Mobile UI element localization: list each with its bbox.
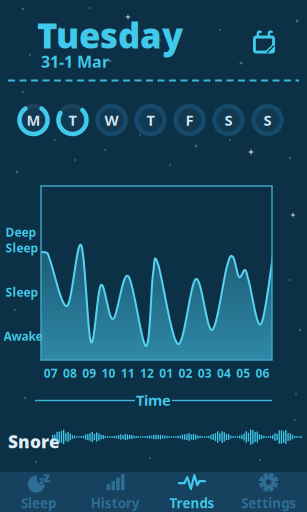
staticText: W (104, 110, 118, 130)
staticText: 10 (101, 365, 115, 381)
button[interactable]: Trends (153, 472, 230, 512)
staticText: z (43, 468, 50, 486)
staticText: Tuesday (37, 12, 183, 58)
staticText: 03 (198, 365, 212, 381)
staticText: 04 (217, 365, 231, 381)
staticText: Trends (169, 494, 214, 512)
staticText: 12 (140, 365, 154, 381)
staticText: 02 (178, 365, 192, 381)
staticText: 01 (159, 365, 173, 381)
button[interactable]: Calendar (249, 27, 279, 57)
button[interactable]: History (77, 472, 154, 512)
button[interactable]: S (209, 100, 247, 140)
staticText: Sleep (5, 284, 38, 300)
staticText: 06 (255, 365, 269, 381)
staticText: 08 (63, 365, 77, 381)
button[interactable]: Settings (230, 472, 307, 512)
staticText: Sleep (21, 494, 56, 512)
staticText: S (263, 110, 271, 130)
button[interactable]: T (131, 100, 169, 140)
staticText: T (146, 110, 154, 130)
staticText: Awake (3, 328, 42, 344)
button[interactable]: T (53, 100, 91, 140)
staticText: History (91, 494, 140, 512)
staticText: z (39, 473, 44, 487)
staticText: Settings (241, 494, 296, 512)
staticText: 09 (82, 365, 96, 381)
button[interactable]: z (0, 472, 77, 512)
button[interactable]: F (170, 100, 208, 140)
staticText: 05 (236, 365, 250, 381)
staticText: S (224, 110, 232, 130)
button[interactable]: M (14, 100, 52, 140)
button[interactable]: W (92, 100, 130, 140)
staticText: 07 (44, 365, 58, 381)
button[interactable]: S (248, 100, 286, 140)
staticText: Time (136, 390, 171, 410)
staticText: Snore (8, 430, 60, 453)
staticText: 11 (121, 365, 135, 381)
staticText: T (68, 110, 76, 130)
staticText: F (185, 110, 193, 130)
staticText: 31-1 Mar (41, 51, 109, 72)
staticText: Deep Sleep (5, 224, 38, 256)
staticText: M (26, 110, 40, 130)
